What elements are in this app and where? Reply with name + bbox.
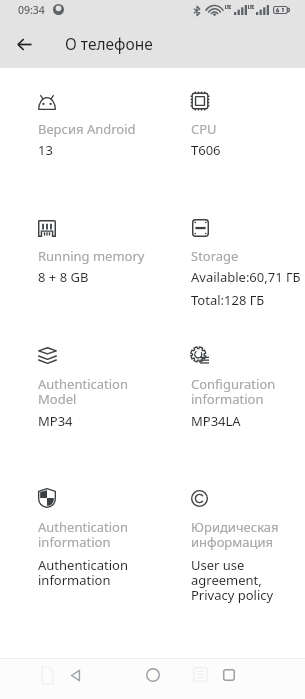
button[interactable]: Authentication information [38, 484, 152, 594]
button[interactable]: Back [65, 665, 86, 685]
button[interactable]: Back [9, 29, 40, 60]
staticText: Authentication Model [38, 375, 152, 408]
button[interactable]: Running memory [38, 216, 152, 326]
button[interactable]: Android version [38, 91, 152, 201]
button[interactable]: Storage [191, 215, 305, 325]
staticText: О телефоне [65, 33, 153, 54]
staticText: Storage [191, 247, 305, 265]
staticText: 8 + 8 GB [38, 268, 89, 286]
staticText: Total:128 ГБ [191, 291, 265, 309]
button[interactable]: Home [143, 665, 162, 685]
staticText: T606 [191, 141, 221, 159]
staticText: 09:34 [18, 3, 45, 17]
button[interactable]: Authentication model [38, 343, 152, 453]
button[interactable]: Tasks [189, 663, 211, 686]
staticText: CPU [191, 120, 305, 138]
staticText: 13 [38, 141, 53, 159]
staticText: MP34LA [191, 412, 241, 430]
button[interactable]: Recents [218, 665, 239, 685]
staticText: Юридическая информация [191, 518, 305, 551]
button[interactable]: CPU [191, 88, 305, 198]
staticText: Версия Android [38, 120, 152, 138]
staticText: Authentication information [38, 556, 152, 589]
button[interactable]: Notes [36, 663, 58, 687]
staticText: Running memory [38, 247, 152, 265]
staticText: Configuration information [191, 375, 305, 408]
staticText: MP34 [38, 412, 73, 430]
button[interactable]: Configuration information [191, 342, 305, 452]
staticText: User use agreement, Privacy policy [191, 556, 305, 604]
button[interactable]: Legal information [191, 486, 305, 596]
staticText: Authentication information [38, 518, 152, 551]
staticText: Available:60,71 ГБ [191, 268, 301, 286]
